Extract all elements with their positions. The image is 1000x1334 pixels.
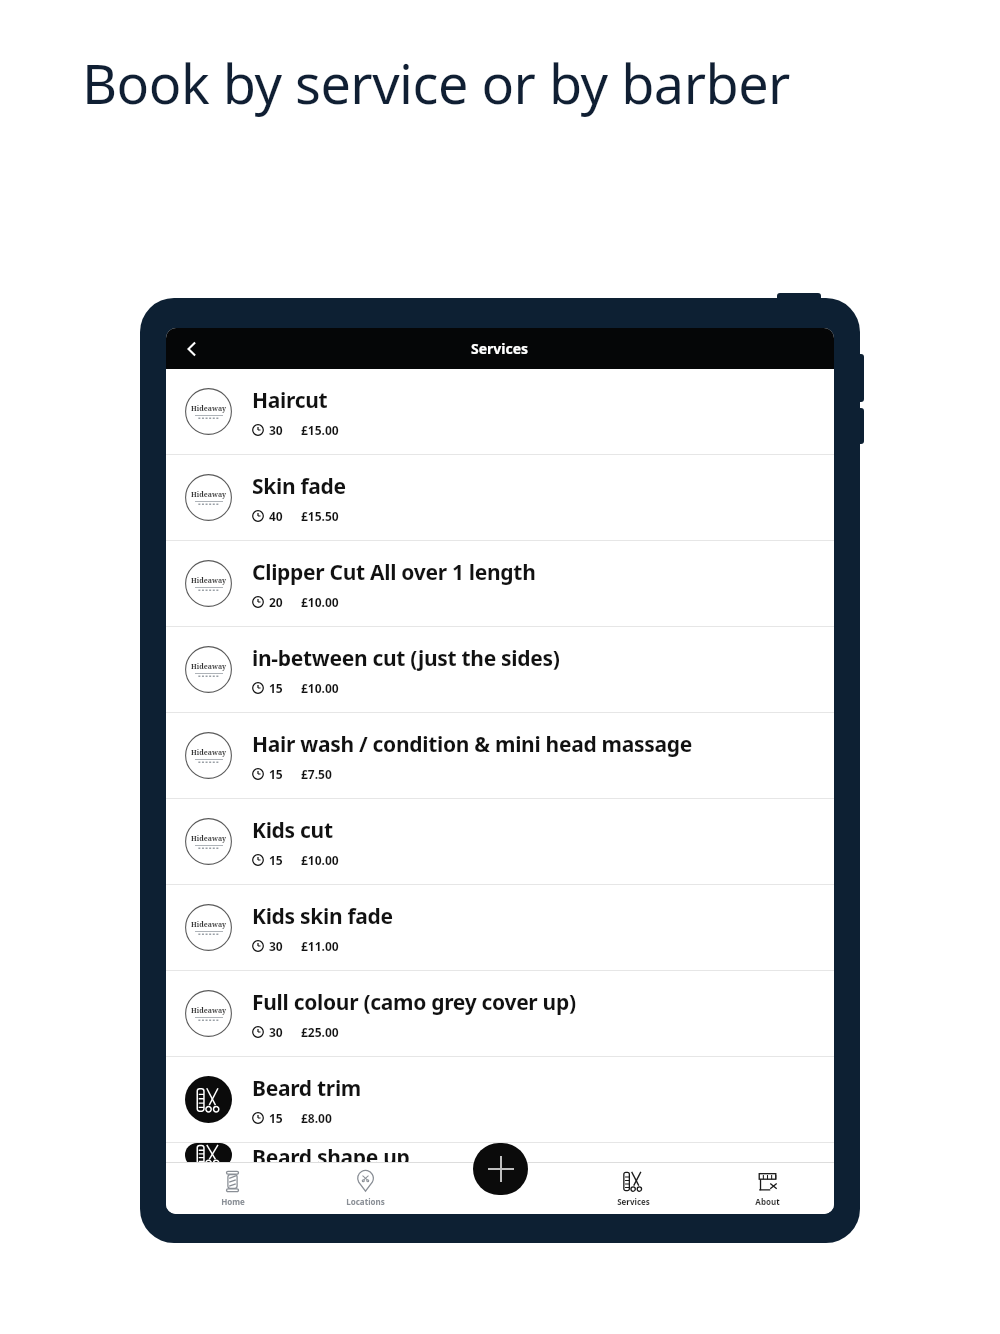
staticText: Hideaway [191, 1006, 227, 1016]
staticText: £11.00 [301, 938, 339, 954]
staticText: in-between cut (just the sides) [252, 644, 560, 673]
button[interactable]: Back [172, 329, 212, 369]
staticText: £10.00 [301, 594, 339, 610]
staticText: Locations [346, 1196, 385, 1207]
button[interactable]: Services [566, 1162, 700, 1214]
button[interactable]: Beard shape up [166, 1143, 834, 1167]
staticText: Skin fade [252, 472, 346, 501]
staticText: Hideaway [191, 834, 227, 844]
button[interactable]: Hideaway [166, 541, 834, 626]
button[interactable]: Hideaway [166, 627, 834, 712]
staticText: Beard trim [252, 1074, 362, 1103]
staticText: 40 [269, 508, 283, 524]
staticText: Beard shape up [252, 1143, 410, 1167]
staticText: 30 [269, 422, 283, 438]
staticText: Haircut [252, 386, 328, 415]
staticText: Hideaway [191, 748, 227, 758]
staticText: £10.00 [301, 680, 339, 696]
button[interactable]: Hideaway [166, 885, 834, 970]
staticText: Hideaway [191, 920, 227, 930]
staticText: Hideaway [191, 576, 227, 586]
button[interactable]: About [700, 1162, 834, 1214]
staticText: Hair wash / condition & mini head massag… [252, 730, 693, 759]
staticText: Hideaway [191, 490, 227, 500]
button[interactable]: Locations [299, 1162, 432, 1214]
staticText: Book by service or by barber [82, 46, 790, 120]
staticText: Hideaway [191, 662, 227, 672]
staticText: 15 [269, 766, 283, 782]
button[interactable]: Hideaway [166, 799, 834, 884]
button[interactable]: Hideaway [166, 369, 834, 454]
staticText: £8.00 [301, 1110, 332, 1126]
staticText: 20 [269, 594, 283, 610]
staticText: £25.00 [301, 1024, 339, 1040]
staticText: Kids cut [252, 816, 333, 845]
staticText: Full colour (camo grey cover up) [252, 988, 576, 1017]
staticText: 30 [269, 938, 283, 954]
staticText: Services [471, 339, 529, 358]
button[interactable]: Hideaway [166, 713, 834, 798]
staticText: 15 [269, 1110, 283, 1126]
staticText: £7.50 [301, 766, 332, 782]
staticText: 15 [269, 852, 283, 868]
staticText: 15 [269, 680, 283, 696]
staticText: £15.00 [301, 422, 339, 438]
staticText: Home [221, 1196, 245, 1207]
staticText: Clipper Cut All over 1 length [252, 558, 536, 587]
button[interactable]: Hideaway [166, 971, 834, 1056]
staticText: About [755, 1196, 780, 1207]
staticText: Kids skin fade [252, 902, 393, 931]
staticText: 30 [269, 1024, 283, 1040]
button[interactable]: Beard trim [166, 1057, 834, 1142]
staticText: £10.00 [301, 852, 339, 868]
button[interactable]: Hideaway [166, 455, 834, 540]
staticText: Hideaway [191, 404, 227, 414]
button[interactable]: Add booking [473, 1143, 528, 1195]
staticText: Services [617, 1196, 650, 1207]
staticText: £15.50 [301, 508, 339, 524]
button[interactable]: Home [166, 1162, 299, 1214]
